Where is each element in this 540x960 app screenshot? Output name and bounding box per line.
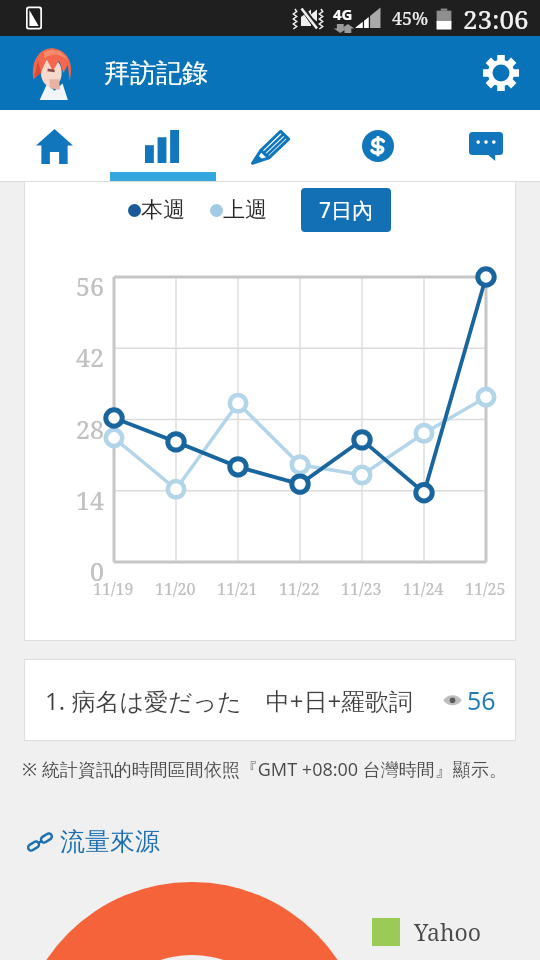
staticText: 42 — [76, 340, 104, 374]
staticText: 上週 — [223, 196, 267, 224]
staticText: 11/24 — [403, 578, 444, 600]
button[interactable]: Home — [0, 110, 108, 182]
staticText: 11/22 — [279, 578, 320, 600]
staticText: 本週 — [141, 196, 185, 224]
staticText: 11/21 — [217, 578, 258, 600]
button[interactable]: 1. 病名は愛だった 中+日+羅歌詞 — [24, 659, 516, 741]
staticText: 1. 病名は愛だった 中+日+羅歌詞 — [45, 684, 414, 717]
button[interactable]: Edit — [216, 110, 324, 182]
staticText: 56 — [76, 269, 104, 303]
staticText: 14 — [76, 483, 104, 517]
staticText: 7日內 — [319, 196, 374, 225]
staticText: 23:06 — [463, 1, 529, 36]
staticText: 拜訪記錄 — [104, 57, 208, 90]
staticText: ※ 統計資訊的時間區間依照『GMT +08:00 台灣時間』顯示。 — [22, 757, 507, 782]
staticText: 28 — [76, 412, 104, 446]
staticText: 11/19 — [93, 578, 134, 600]
staticText: 0 — [90, 554, 104, 588]
button[interactable]: 7日內 — [301, 188, 391, 232]
staticText: 11/20 — [155, 578, 196, 600]
button[interactable]: Messages — [432, 110, 540, 182]
staticText: 45% — [392, 6, 429, 31]
staticText: 11/25 — [465, 578, 506, 600]
staticText: 11/23 — [341, 578, 382, 600]
staticText: 4G — [333, 4, 353, 24]
staticText: 56 — [467, 683, 496, 717]
staticText: 流量來源 — [60, 826, 160, 857]
button[interactable]: Settings — [474, 46, 528, 100]
button[interactable]: Statistics — [108, 110, 216, 182]
staticText: Yahoo — [414, 916, 482, 947]
button[interactable]: Earnings — [324, 110, 432, 182]
